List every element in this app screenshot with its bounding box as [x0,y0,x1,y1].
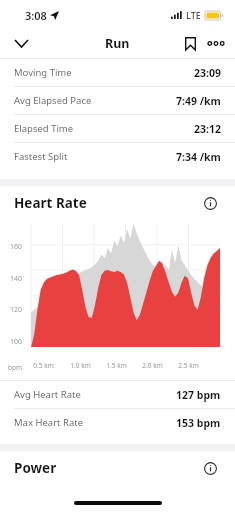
button[interactable]: Fastest Split [0,143,235,170]
staticText: 140 [10,274,23,284]
staticText: Heart Rate [14,194,87,212]
staticText: Moving Time [14,66,72,79]
staticText: Power [14,459,57,477]
staticText: Elapsed Time [14,122,74,135]
button[interactable]: Collapse [8,30,34,56]
staticText: 153 bpm [176,416,221,430]
button[interactable]: About Power [199,457,221,479]
staticText: 2.5 km [178,361,199,370]
staticText: LTE [186,9,201,21]
button[interactable]: More options [203,30,229,56]
staticText: 7:49 /km [176,94,221,108]
button[interactable]: About Heart Rate [199,192,221,214]
staticText: 160 [10,242,23,252]
button[interactable]: Avg Heart Rate [0,381,235,408]
button[interactable]: Avg Elapsed Pace [0,87,235,114]
staticText: 1.5 km [106,361,127,370]
staticText: Fastest Split [14,150,68,163]
staticText: bpm [8,363,23,372]
staticText: 3:08 [25,8,47,23]
staticText: Max Heart Rate [14,416,84,429]
staticText: 0.5 km [33,361,54,370]
button[interactable]: Max Heart Rate [0,409,235,436]
staticText: 1.0 km [70,361,91,370]
staticText: 7:34 /km [176,150,221,164]
staticText: 127 bpm [176,388,221,402]
staticText: Run [105,35,130,52]
staticText: 120 [10,305,23,315]
staticText: 23:12 [194,122,221,136]
staticText: Avg Heart Rate [14,388,81,401]
staticText: 100 [10,337,23,347]
button[interactable]: Elapsed Time [0,115,235,142]
button[interactable]: Bookmark [177,30,203,56]
button[interactable]: Moving Time [0,59,235,86]
staticText: 2.0 km [142,361,163,370]
staticText: Avg Elapsed Pace [14,94,92,107]
staticText: 23:09 [194,66,221,80]
